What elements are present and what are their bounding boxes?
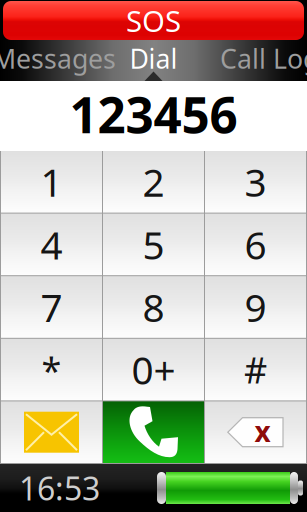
button[interactable]: 7 xyxy=(1,276,102,338)
button[interactable]: 2 xyxy=(103,151,204,213)
button[interactable]: 5 xyxy=(103,214,204,275)
button[interactable]: Dial xyxy=(124,38,182,79)
staticText: * xyxy=(41,345,61,394)
staticText: SOS xyxy=(126,0,181,40)
staticText: 4 xyxy=(40,218,62,271)
staticText: 1 xyxy=(40,155,62,208)
staticText: 16:53 xyxy=(19,466,100,510)
button[interactable]: * xyxy=(1,339,102,400)
staticText: 8 xyxy=(142,281,164,333)
button[interactable]: # xyxy=(205,339,306,400)
staticText: x xyxy=(254,412,270,450)
button[interactable]: 4 xyxy=(1,214,102,275)
staticText: 7 xyxy=(40,281,62,333)
button[interactable]: SOS xyxy=(0,0,307,40)
staticText: # xyxy=(244,345,267,394)
staticText: 5 xyxy=(142,218,164,271)
button[interactable]: 9 xyxy=(205,276,306,338)
button[interactable]: 1 xyxy=(1,151,102,213)
button[interactable]: 0+ xyxy=(103,339,204,400)
staticText: Call Log xyxy=(220,40,307,77)
staticText: 3 xyxy=(244,155,266,208)
staticText: 2 xyxy=(142,155,164,208)
staticText: 6 xyxy=(244,218,266,271)
button[interactable]: New message xyxy=(1,401,102,463)
button[interactable]: Call Log xyxy=(207,38,307,79)
staticText: 123456 xyxy=(69,80,237,148)
button[interactable]: 8 xyxy=(103,276,204,338)
button[interactable]: Messages xyxy=(0,38,100,79)
button[interactable]: 3 xyxy=(205,151,306,213)
button[interactable]: Call xyxy=(103,401,204,463)
button[interactable]: Delete xyxy=(205,401,306,463)
staticText: Messages xyxy=(0,40,116,77)
staticText: Dial xyxy=(129,40,177,77)
staticText: 0+ xyxy=(131,343,175,396)
staticText: 9 xyxy=(244,281,266,333)
button[interactable]: 6 xyxy=(205,214,306,275)
